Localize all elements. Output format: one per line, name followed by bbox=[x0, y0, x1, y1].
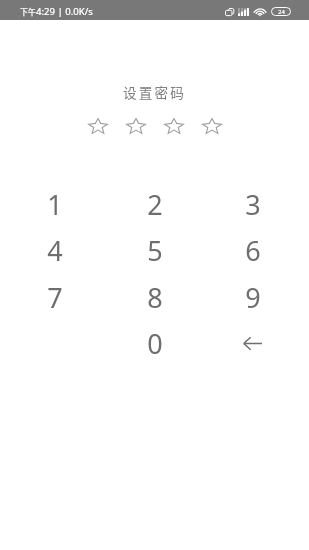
staticText: 下午 bbox=[20, 6, 36, 18]
button[interactable]: 8 bbox=[105, 274, 204, 321]
staticText: 7 bbox=[47, 279, 63, 316]
button[interactable]: 1 bbox=[5, 181, 104, 228]
staticText: 0 bbox=[147, 325, 163, 362]
staticText: 5 bbox=[147, 232, 163, 269]
staticText: 9 bbox=[245, 279, 261, 316]
staticText: 2 bbox=[147, 186, 163, 223]
button[interactable]: 4 bbox=[5, 227, 104, 274]
staticText: 4 bbox=[47, 232, 63, 269]
button[interactable]: 7 bbox=[5, 274, 104, 321]
button[interactable]: 9 bbox=[203, 274, 302, 321]
staticText: 6 bbox=[245, 232, 261, 269]
staticText: 24 bbox=[278, 8, 285, 16]
button[interactable]: 0 bbox=[105, 320, 204, 367]
staticText: 8 bbox=[147, 279, 163, 316]
button[interactable]: 2 bbox=[105, 181, 204, 228]
staticText: 4:29 | 0.0K/s bbox=[36, 5, 93, 18]
button[interactable]: 3 bbox=[203, 181, 302, 228]
staticText: 3 bbox=[245, 186, 261, 223]
button[interactable]: Backspace bbox=[203, 320, 302, 367]
button[interactable]: 6 bbox=[203, 227, 302, 274]
staticText: 设置密码 bbox=[0, 82, 309, 102]
button[interactable]: 5 bbox=[105, 227, 204, 274]
staticText: 1 bbox=[47, 186, 63, 223]
